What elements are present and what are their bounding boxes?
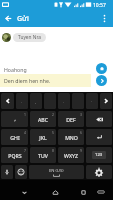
button[interactable]: Numbers [86, 147, 112, 163]
button[interactable]: Voice input [1, 165, 13, 179]
button[interactable]: PQRS [1, 147, 28, 163]
staticText: MNO [65, 134, 78, 141]
staticText: 4 [24, 130, 26, 135]
staticText: 1 [24, 112, 26, 117]
button[interactable]: Settings [86, 165, 112, 179]
staticText: Tuyen Nra [18, 34, 41, 41]
button[interactable]: DEF [58, 111, 84, 127]
staticText: GHI [10, 134, 20, 141]
button[interactable]: TUV [30, 147, 56, 163]
button[interactable]: Switch keyboard [93, 184, 109, 200]
button[interactable]: Tuyen Nra [13, 33, 46, 42]
button[interactable]: MNO [58, 129, 84, 145]
staticText: 8 [52, 148, 54, 153]
staticText: 3 [80, 112, 82, 117]
staticText: 10:57 [93, 2, 106, 9]
staticText: EN (US) [49, 168, 64, 174]
staticText: 6 [80, 130, 82, 135]
staticText: WXYZ [64, 152, 78, 159]
staticText: 123 [95, 152, 103, 158]
button[interactable]: Previous suggestion [1, 93, 14, 109]
staticText: Hoahong [4, 66, 27, 73]
button[interactable]: Recents [75, 184, 91, 200]
button[interactable]: Backspace [86, 111, 112, 127]
staticText: · [91, 99, 93, 104]
staticText: . [21, 99, 23, 104]
button[interactable]: , [30, 93, 42, 109]
button[interactable]: Next suggestion [100, 93, 112, 109]
button[interactable]: More options [96, 10, 113, 27]
button[interactable]: Home [47, 184, 63, 200]
button[interactable]: Back [0, 10, 17, 27]
button[interactable]: WXYZ [58, 147, 84, 163]
button[interactable]: GHI [1, 129, 28, 145]
staticText: Den diem hen nhe. [4, 77, 51, 84]
button[interactable]: Send [96, 75, 107, 86]
button[interactable]: , [1, 111, 28, 127]
staticText: , [14, 116, 16, 122]
button[interactable]: Voice message [96, 63, 107, 74]
staticText: PQRS [8, 152, 22, 159]
staticText: Gửi [17, 14, 29, 24]
button[interactable]: Emoji [15, 165, 27, 179]
button[interactable]: ABC [30, 111, 56, 127]
staticText: DEF [66, 116, 76, 123]
staticText: ABC [38, 116, 48, 123]
button[interactable]: Space [29, 165, 84, 179]
staticText: JKL [39, 134, 47, 141]
staticText: , [35, 99, 37, 104]
staticText: . [63, 99, 65, 104]
button[interactable]: JKL [30, 129, 56, 145]
staticText: 5 [52, 130, 54, 135]
staticText: TUV [38, 152, 48, 159]
staticText: 7 [24, 148, 26, 153]
staticText: 9 [80, 148, 82, 153]
button[interactable]: Enter [86, 129, 112, 145]
staticText: 2 [52, 112, 54, 117]
button[interactable]: Hide keyboard [16, 184, 32, 200]
